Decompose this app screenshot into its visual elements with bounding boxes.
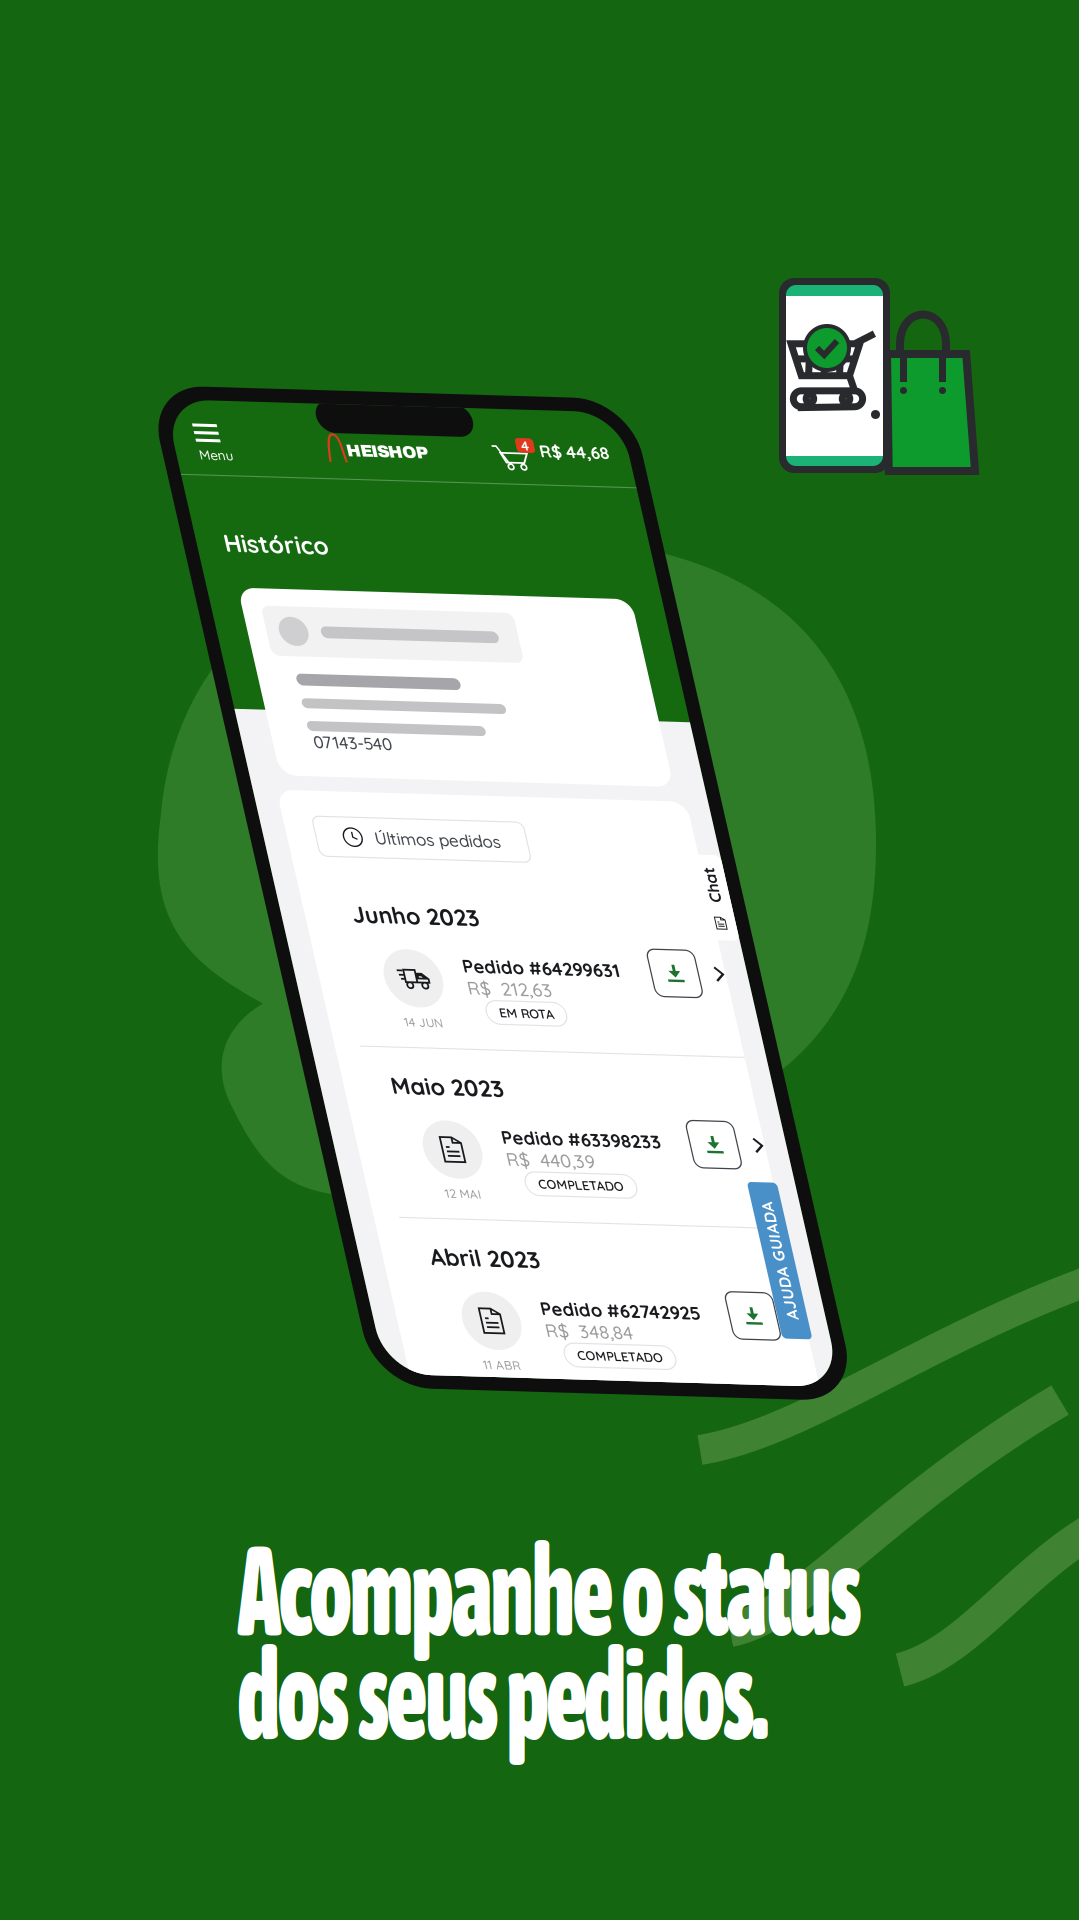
staticText: Histórico bbox=[192, 540, 307, 573]
button[interactable]: Chat bbox=[629, 886, 662, 980]
staticText: Pedido #62742925 bbox=[349, 1380, 525, 1405]
staticText: Maio 2023 bbox=[240, 1135, 364, 1167]
button[interactable]: Pedido #62742925, R$ 348,84, COMPLETADO bbox=[188, 1368, 638, 1484]
button[interactable]: Pedido #64299631, R$ 212,63, EM ROTA bbox=[188, 992, 638, 1108]
staticText: 07143-540 bbox=[241, 762, 327, 785]
staticText: AJUDA GUIADA bbox=[561, 1321, 690, 1343]
staticText: R$ 440,39 bbox=[349, 1216, 446, 1241]
staticText: 14 JUN bbox=[270, 1072, 313, 1089]
button[interactable]: Últimos pedidos bbox=[220, 856, 452, 900]
button[interactable]: Pedido #63398233, R$ 440,39, COMPLETADO bbox=[188, 1180, 638, 1296]
button[interactable]: Menu bbox=[183, 422, 228, 473]
button[interactable]: HEISHOP bbox=[330, 432, 440, 464]
button[interactable]: Carrinho, 4 itens, R$ 44,68 bbox=[508, 426, 640, 464]
staticText: R$ 44,68 bbox=[564, 433, 640, 457]
staticText: Pedido #64299631 bbox=[349, 1004, 522, 1029]
staticText: Acompanhe o status bbox=[238, 1518, 1079, 1662]
staticText: dos seus pedidos. bbox=[238, 1622, 995, 1766]
staticText: Pedido #63398233 bbox=[349, 1192, 524, 1217]
staticText: Últimos pedidos bbox=[284, 866, 422, 890]
staticText: 4 bbox=[545, 430, 554, 449]
staticText: R$ 212,63 bbox=[349, 1028, 442, 1053]
button[interactable]: Ajuda guiada bbox=[609, 1246, 642, 1418]
staticText: Junho 2023 bbox=[240, 947, 380, 979]
staticText: COMPLETADO bbox=[378, 1246, 472, 1264]
staticText: Menu bbox=[187, 451, 224, 469]
staticText: HEISHOP bbox=[351, 441, 440, 461]
